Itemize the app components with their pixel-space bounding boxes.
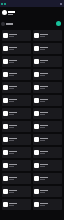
button[interactable] (33, 160, 62, 171)
button[interactable] (2, 30, 31, 41)
button[interactable] (33, 69, 62, 80)
button[interactable] (2, 82, 31, 93)
button[interactable] (2, 121, 31, 132)
button[interactable] (33, 173, 62, 184)
button[interactable] (2, 160, 31, 171)
button[interactable] (2, 186, 31, 197)
button[interactable] (2, 56, 31, 67)
button[interactable] (33, 30, 62, 41)
button[interactable] (2, 43, 31, 54)
button[interactable] (33, 134, 62, 145)
button[interactable] (33, 121, 62, 132)
button[interactable] (2, 69, 31, 80)
button[interactable] (33, 43, 62, 54)
button[interactable] (2, 134, 31, 145)
button[interactable] (33, 186, 62, 197)
button[interactable] (2, 108, 31, 119)
button[interactable] (33, 82, 62, 93)
button[interactable] (2, 95, 31, 106)
button[interactable] (33, 56, 62, 67)
button[interactable] (33, 147, 62, 158)
button[interactable] (33, 108, 62, 119)
button[interactable] (2, 173, 31, 184)
button[interactable] (2, 147, 31, 158)
button[interactable] (33, 199, 62, 210)
button[interactable] (33, 95, 62, 106)
button[interactable] (2, 199, 31, 210)
